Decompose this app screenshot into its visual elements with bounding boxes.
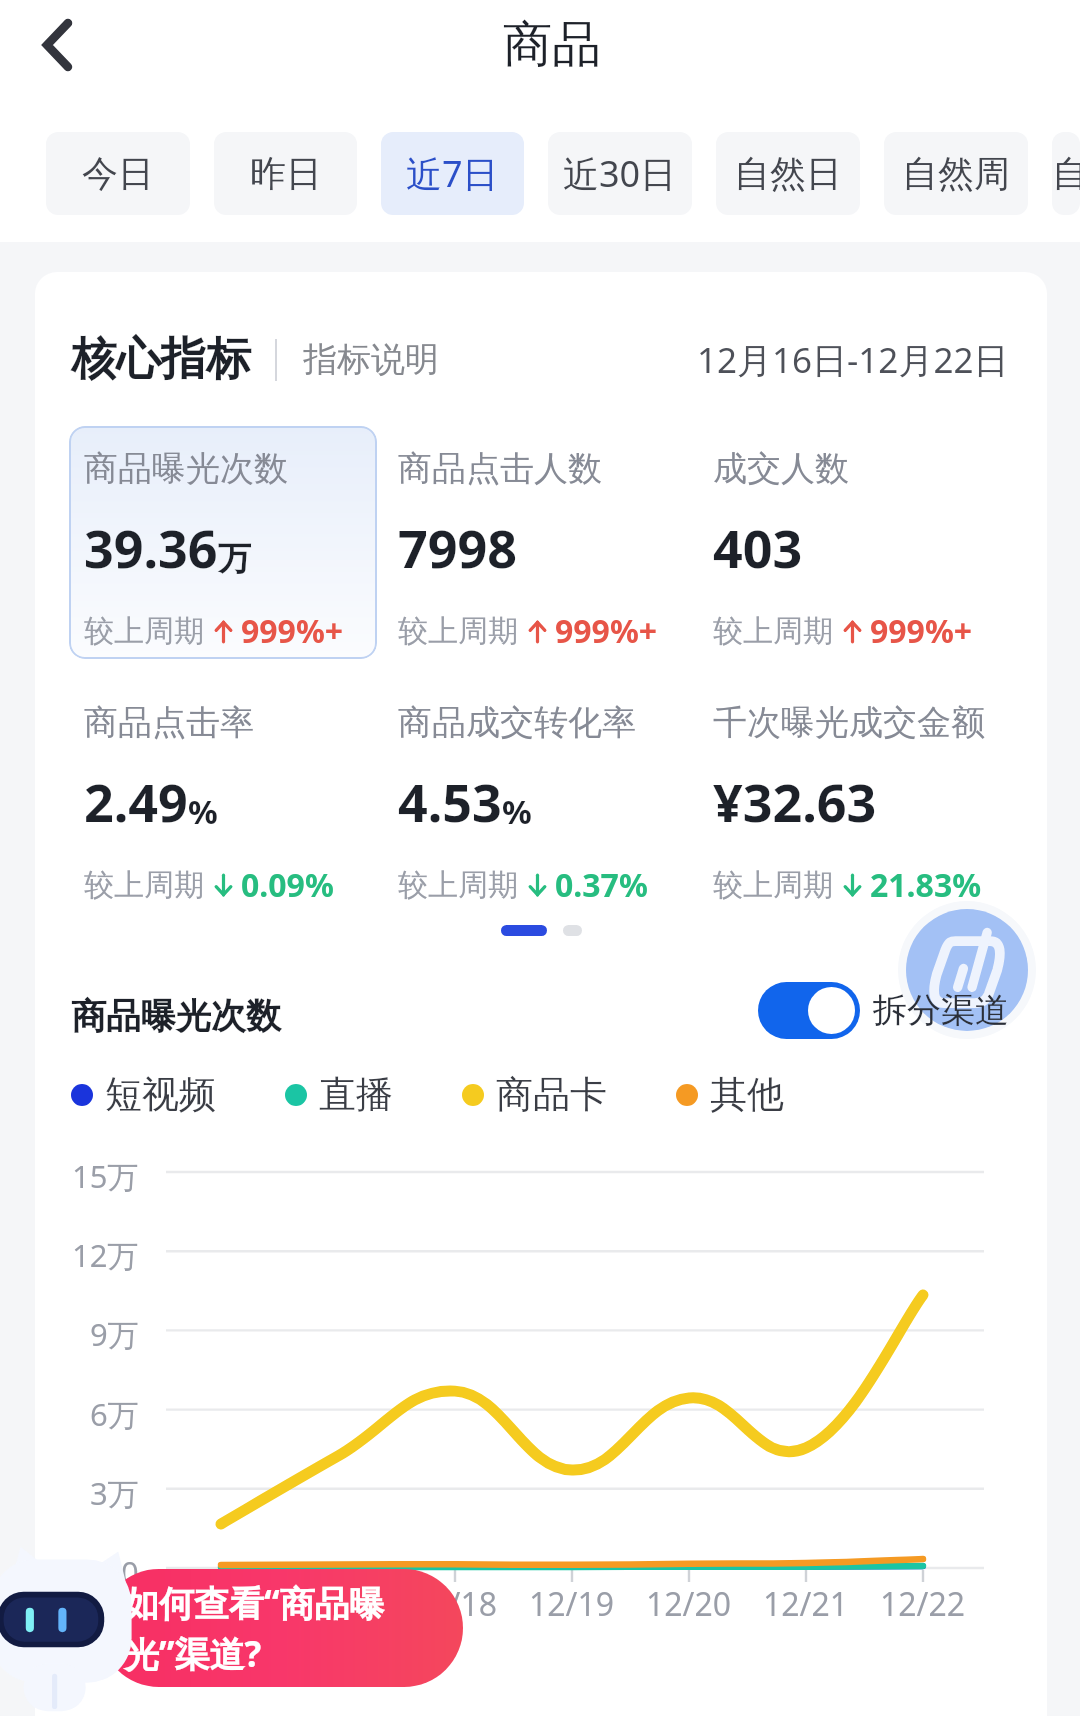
staticText: 近7日 [406, 149, 499, 198]
staticText: 较上周期 [398, 612, 518, 650]
staticText: 6万 [90, 1393, 139, 1435]
staticText: 较上周期 [713, 612, 833, 650]
staticText: 12/22 [880, 1582, 966, 1626]
staticText: 商品成交转化率 [398, 701, 636, 744]
button[interactable]: 如何查看“商品曝 [100, 1569, 463, 1687]
button[interactable]: 成交人数 [698, 426, 1007, 659]
button[interactable]: 商品卡 [462, 1071, 607, 1118]
staticText: 7998 [398, 512, 517, 583]
staticText: ¥32.63 [713, 766, 877, 837]
staticText: 商品点击人数 [398, 447, 602, 490]
button[interactable]: Analytics [906, 909, 1028, 1031]
button[interactable]: 近30日 [548, 132, 692, 215]
staticText: 较上周期 [713, 866, 833, 904]
staticText: % [502, 789, 532, 834]
staticText: 403 [713, 512, 803, 583]
staticText: 自然周 [902, 151, 1010, 196]
staticText: 12/18 [412, 1582, 498, 1626]
staticText: 千次曝光成交金额 [713, 701, 985, 744]
staticText: 0 [121, 1551, 139, 1593]
staticText: 昨日 [250, 151, 322, 196]
button[interactable]: Back [16, 6, 100, 90]
button[interactable]: 商品点击人数 [383, 426, 692, 659]
staticText: 12月16日-12月22日 [697, 336, 1009, 384]
staticText: 近30日 [563, 149, 677, 198]
button[interactable]: 拆分渠道 [758, 982, 1009, 1050]
button[interactable]: 自然月 [1052, 132, 1080, 215]
staticText: 9万 [90, 1313, 139, 1355]
staticText: 21.83% [870, 863, 982, 907]
button[interactable]: 短视频 [71, 1071, 216, 1118]
staticText: 2.49 [84, 766, 188, 837]
staticText: 4.53 [398, 766, 502, 837]
staticText: 15万 [72, 1155, 139, 1197]
staticText: 其他 [710, 1071, 784, 1118]
staticText: 如何查看“商品曝 [124, 1579, 385, 1627]
staticText: 0.37% [555, 863, 648, 907]
button[interactable]: 自然周 [884, 132, 1028, 215]
button[interactable]: 商品曝光次数 [69, 426, 377, 659]
staticText: % [188, 789, 218, 834]
staticText: 12/17 [295, 1582, 381, 1626]
staticText: 核心指标 [71, 331, 251, 388]
staticText: 12/20 [646, 1582, 732, 1626]
button[interactable]: 商品成交转化率 [383, 680, 692, 913]
staticText: 较上周期 [84, 612, 204, 650]
button[interactable]: 商品点击率 [69, 680, 377, 913]
staticText: 万 [218, 538, 251, 580]
staticText: 商品曝光次数 [84, 447, 288, 490]
staticText: 今日 [82, 151, 154, 196]
staticText: 39.36 [84, 512, 218, 583]
staticText: 较上周期 [398, 866, 518, 904]
staticText: 12万 [72, 1234, 139, 1276]
staticText: 12/16 [178, 1582, 264, 1626]
staticText: 自然日 [734, 151, 842, 196]
staticText: 拆分渠道 [873, 989, 1009, 1032]
staticText: 999%+ [241, 609, 344, 653]
staticText: 999%+ [555, 609, 658, 653]
staticText: 商品曝光次数 [71, 994, 281, 1038]
button[interactable]: 今日 [46, 132, 190, 215]
staticText: 直播 [319, 1071, 393, 1118]
staticText: 光”渠道? [124, 1630, 262, 1678]
button[interactable]: 指标说明 [303, 338, 439, 381]
button[interactable]: 自然日 [716, 132, 860, 215]
button[interactable]: 昨日 [214, 132, 357, 215]
staticText: 3万 [90, 1472, 139, 1514]
staticText: 较上周期 [84, 866, 204, 904]
button[interactable]: 千次曝光成交金额 [698, 680, 1007, 913]
staticText: 成交人数 [713, 447, 849, 490]
staticText: 商品点击率 [84, 701, 254, 744]
staticText: 12/21 [763, 1582, 849, 1626]
staticText: 自然月 [1052, 151, 1080, 196]
staticText: 短视频 [105, 1071, 216, 1118]
button[interactable]: 近7日 [381, 132, 524, 215]
button[interactable]: 其他 [676, 1071, 784, 1118]
staticText: 12/19 [529, 1582, 615, 1626]
staticText: 商品卡 [496, 1071, 607, 1118]
staticText: 商品 [503, 14, 601, 76]
staticText: 0.09% [241, 863, 334, 907]
button[interactable]: 直播 [285, 1071, 393, 1118]
staticText: 999%+ [870, 609, 973, 653]
